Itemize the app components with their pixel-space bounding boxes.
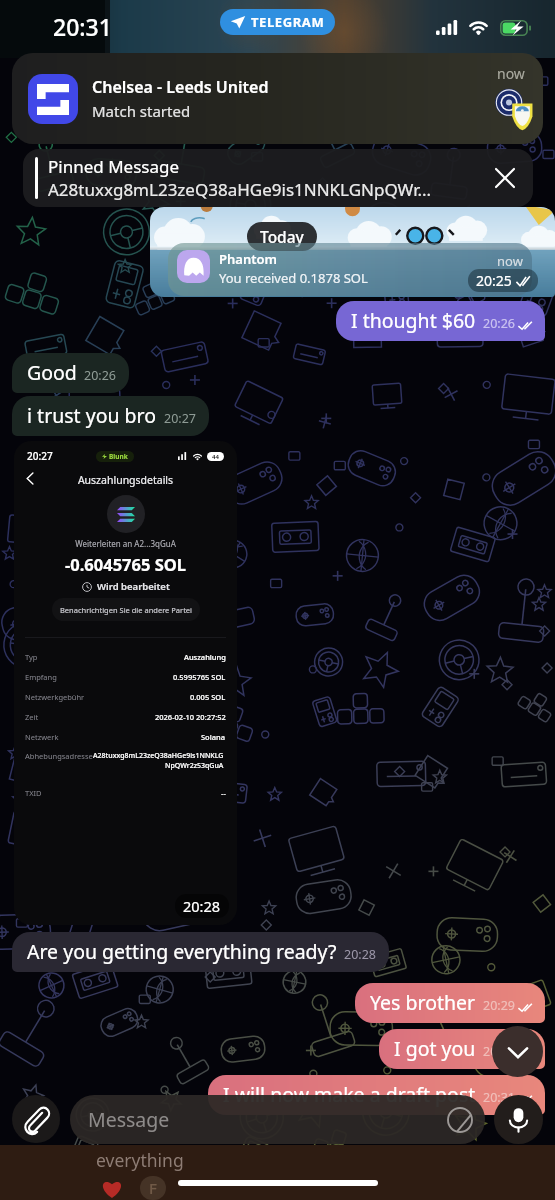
- button[interactable]: I got you: [379, 1029, 545, 1069]
- staticText: Good: [27, 359, 77, 386]
- button[interactable]: Close pinned message: [485, 158, 525, 198]
- staticText: Pinned Message: [48, 155, 180, 178]
- staticText: 20:31: [483, 1089, 515, 1106]
- staticText: Chelsea - Leeds United: [92, 76, 269, 98]
- staticText: 0.005 SOL: [190, 692, 226, 702]
- staticText: NpQWr2z53qGuA: [165, 761, 224, 771]
- button[interactable]: I thought $60: [336, 301, 545, 341]
- staticText: 0.5995765 SOL: [173, 672, 226, 682]
- button[interactable]: Scroll to bottom: [492, 1026, 543, 1077]
- button[interactable]: i trust you bro: [12, 396, 209, 436]
- staticText: Empfang: [25, 672, 57, 682]
- button[interactable]: Yes brother: [355, 983, 545, 1023]
- staticText: Match started: [92, 101, 191, 121]
- staticText: -0.6045765 SOL: [14, 553, 237, 575]
- staticText: now: [497, 64, 525, 83]
- staticText: 2026-02-10 20:27:52: [155, 712, 226, 722]
- staticText: Zeit: [25, 712, 39, 722]
- staticText: Auszahlungsdetails: [14, 473, 237, 487]
- staticText: Benachrichtigen Sie die andere Partei: [60, 605, 193, 615]
- staticText: A28tuxxg8mL23zeQ38aHGe9is1NNKLGNpQWr...: [48, 178, 432, 201]
- staticText: Blunk: [109, 452, 128, 461]
- button[interactable]: I will now make a draft post: [208, 1075, 545, 1115]
- staticText: 20:28: [183, 896, 221, 916]
- button[interactable]: Message: [70, 1095, 485, 1144]
- button[interactable]: Pinned Message: [23, 149, 533, 207]
- staticText: everything: [96, 1148, 184, 1172]
- staticText: I will now make a draft post: [223, 1081, 476, 1108]
- staticText: Netzwerk: [25, 732, 59, 742]
- staticText: 20:29: [483, 1043, 515, 1060]
- button[interactable]: Good: [12, 353, 129, 393]
- staticText: TELEGRAM: [251, 13, 325, 31]
- button[interactable]: Chelsea - Leeds United: [12, 53, 543, 144]
- staticText: Weiterleiten an A2...3qGuA: [14, 538, 237, 549]
- staticText: 20:28: [344, 946, 376, 963]
- button[interactable]: Phantom: [168, 243, 532, 296]
- button[interactable]: Stickers: [444, 1104, 476, 1136]
- staticText: 20:31: [53, 11, 112, 42]
- staticText: 20:29: [483, 997, 515, 1014]
- staticText: --: [221, 788, 226, 798]
- staticText: Are you getting everything ready?: [27, 938, 337, 965]
- staticText: 20:27: [27, 449, 53, 463]
- button[interactable]: 20:27: [14, 441, 237, 925]
- staticText: F: [149, 1178, 157, 1198]
- staticText: Message: [88, 1106, 170, 1133]
- staticText: You received 0.1878 SOL: [219, 269, 368, 287]
- staticText: Netzwerkgebühr: [25, 692, 85, 702]
- staticText: Abhebungsadresse: [25, 751, 93, 761]
- staticText: now: [497, 252, 523, 270]
- staticText: 20:26: [84, 367, 116, 384]
- staticText: I got you: [394, 1035, 476, 1062]
- button[interactable]: [150, 207, 555, 297]
- staticText: Typ: [25, 652, 38, 662]
- staticText: Yes brother: [370, 989, 476, 1016]
- button[interactable]: Are you getting everything ready?: [12, 932, 389, 972]
- staticText: Today: [260, 226, 304, 247]
- staticText: Wird bearbeitet: [97, 580, 170, 593]
- staticText: I thought $60: [351, 307, 476, 334]
- staticText: TXID: [25, 788, 42, 798]
- staticText: Solana: [201, 732, 226, 742]
- staticText: 20:25: [476, 271, 512, 290]
- button[interactable]: Record voice message: [494, 1095, 543, 1144]
- staticText: Auszahlung: [184, 652, 226, 662]
- staticText: A28tuxxg8mL23zeQ38aHGe9is1NNKLG: [93, 751, 224, 761]
- staticText: 44: [212, 453, 219, 461]
- button[interactable]: Benachrichtigen Sie die andere Partei: [52, 598, 200, 621]
- staticText: 20:26: [483, 315, 515, 332]
- staticText: 20:27: [164, 410, 196, 427]
- button[interactable]: Attach file: [12, 1095, 60, 1143]
- staticText: Phantom: [219, 250, 277, 268]
- staticText: i trust you bro: [27, 402, 157, 429]
